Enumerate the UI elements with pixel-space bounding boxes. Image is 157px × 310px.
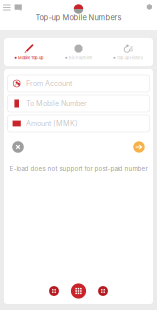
button[interactable]: Back xyxy=(48,285,60,297)
button[interactable]: Bill Payment xyxy=(54,39,103,65)
button[interactable]: To Mobile Number xyxy=(7,95,149,112)
staticText: To Mobile Number xyxy=(26,99,87,108)
button[interactable]: Cancel xyxy=(11,140,25,154)
button[interactable]: Continue xyxy=(132,140,146,154)
button[interactable]: Home xyxy=(70,282,87,299)
staticText: E-load does not support for post-paid nu… xyxy=(9,165,147,172)
button[interactable]: From Account xyxy=(7,75,149,92)
staticText: Top-up Mobile Numbers xyxy=(35,13,121,22)
button[interactable]: Top-up History xyxy=(103,39,153,65)
button[interactable]: Recents xyxy=(97,285,109,297)
staticText: Mobile Top-up xyxy=(18,55,43,60)
button[interactable]: Amount (MMK) xyxy=(7,115,149,132)
staticText: From Account xyxy=(26,79,72,88)
button[interactable]: Notifications xyxy=(142,0,157,16)
staticText: Amount (MMK) xyxy=(26,119,78,128)
button[interactable]: Menu xyxy=(0,0,27,16)
staticText: Top-up History xyxy=(117,55,143,60)
button[interactable]: Mobile Top-up xyxy=(4,39,54,65)
staticText: Bill Payment xyxy=(69,55,92,60)
